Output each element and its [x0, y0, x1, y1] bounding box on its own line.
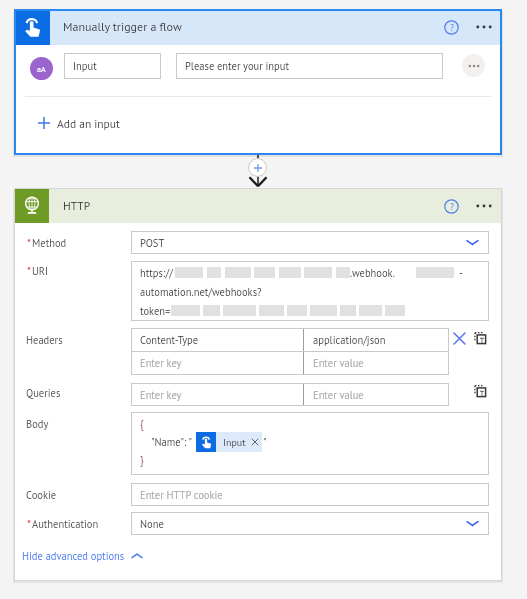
button[interactable]: HTTP — [14, 188, 502, 223]
staticText: } — [140, 453, 144, 467]
button[interactable]: Add an input — [32, 110, 152, 136]
staticText: Please enter your input — [185, 59, 290, 73]
staticText: Enter HTTP cookie — [140, 488, 223, 502]
staticText: Manually trigger a flow — [63, 19, 182, 35]
staticText: URI — [32, 264, 49, 278]
staticText: { — [140, 417, 144, 431]
staticText: aA — [37, 64, 46, 74]
button[interactable]: Insert a new step — [248, 158, 267, 177]
staticText: Content-Type — [140, 333, 199, 347]
staticText: ? — [450, 22, 454, 34]
button[interactable]: { — [131, 412, 489, 475]
staticText: Queries — [26, 386, 61, 400]
staticText: token= — [140, 304, 171, 318]
button[interactable]: Manually trigger a flow — [14, 9, 502, 45]
staticText: HTTP — [63, 198, 91, 213]
button[interactable]: More options — [471, 14, 497, 40]
button[interactable]: Delete header — [449, 328, 469, 348]
button[interactable]: https:// — [131, 261, 489, 321]
staticText: Body — [26, 417, 49, 431]
staticText: Enter value — [313, 388, 364, 402]
staticText: Method — [32, 236, 67, 250]
button[interactable]: None — [131, 512, 489, 535]
staticText: Headers — [26, 333, 63, 347]
staticText: application/json — [313, 333, 386, 347]
staticText: None — [140, 517, 164, 531]
staticText: Enter key — [140, 356, 182, 370]
staticText: Authentication — [32, 517, 99, 531]
staticText: * — [27, 236, 31, 243]
staticText: Enter key — [140, 388, 182, 402]
button[interactable]: Switch headers to text mode — [470, 328, 490, 348]
button[interactable]: POST — [131, 231, 489, 254]
staticText: Input — [73, 59, 97, 73]
staticText: Hide advanced options — [22, 549, 125, 563]
button[interactable]: Help — [438, 14, 464, 40]
button[interactable]: More options — [471, 193, 497, 219]
button[interactable]: Help — [438, 193, 464, 219]
button[interactable]: Switch queries to text mode — [470, 381, 490, 401]
button[interactable]: Please enter your input — [176, 53, 443, 79]
staticText: T — [480, 336, 484, 345]
button[interactable]: Enter HTTP cookie — [131, 483, 489, 506]
button[interactable]: Input options — [462, 54, 485, 77]
staticText: * — [27, 517, 31, 524]
staticText: ? — [450, 201, 454, 213]
staticText: POST — [140, 236, 165, 250]
staticText: Input — [223, 436, 246, 449]
staticText: automation.net/webhooks? — [140, 285, 262, 299]
staticText: * — [27, 264, 31, 271]
staticText: T — [480, 389, 484, 398]
staticText: Enter value — [313, 356, 364, 370]
button[interactable]: Input — [196, 432, 262, 452]
staticText: "Name": " — [151, 435, 192, 449]
button[interactable]: Hide advanced options — [22, 549, 142, 563]
staticText: https:// — [140, 266, 173, 280]
staticText: .webhook. — [350, 266, 395, 280]
button[interactable]: Input — [64, 53, 161, 79]
staticText: Cookie — [26, 488, 57, 502]
staticText: Add an input — [57, 116, 120, 131]
staticText: - — [459, 266, 463, 280]
staticText: " — [263, 435, 267, 449]
